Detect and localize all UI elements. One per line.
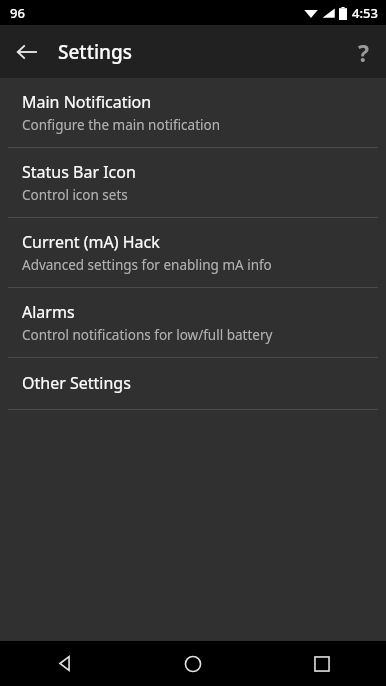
button[interactable]: Back xyxy=(0,641,128,686)
staticText: Settings xyxy=(58,39,132,65)
staticText: 4:53 xyxy=(352,4,378,22)
staticText: Alarms xyxy=(22,301,75,323)
staticText: 96 xyxy=(10,4,25,22)
button[interactable]: Main Notification xyxy=(0,78,386,147)
staticText: ? xyxy=(358,37,369,68)
staticText: Control notifications for low/full batte… xyxy=(22,326,273,344)
staticText: Advanced settings for enabling mA info xyxy=(22,256,272,274)
button[interactable]: Back xyxy=(6,31,48,73)
button[interactable]: Current (mA) Hack xyxy=(0,218,386,287)
button[interactable]: Status Bar Icon xyxy=(0,148,386,217)
staticText: Control icon sets xyxy=(22,186,128,204)
button[interactable]: Recent apps xyxy=(257,641,386,686)
staticText: Configure the main notification xyxy=(22,116,221,134)
staticText: Current (mA) Hack xyxy=(22,231,160,253)
button[interactable]: Other Settings xyxy=(0,358,386,409)
button[interactable]: Home xyxy=(128,641,257,686)
button[interactable]: Help xyxy=(342,31,384,73)
staticText: Other Settings xyxy=(22,372,131,394)
staticText: Status Bar Icon xyxy=(22,161,136,183)
button[interactable]: Alarms xyxy=(0,288,386,357)
staticText: Main Notification xyxy=(22,91,152,113)
